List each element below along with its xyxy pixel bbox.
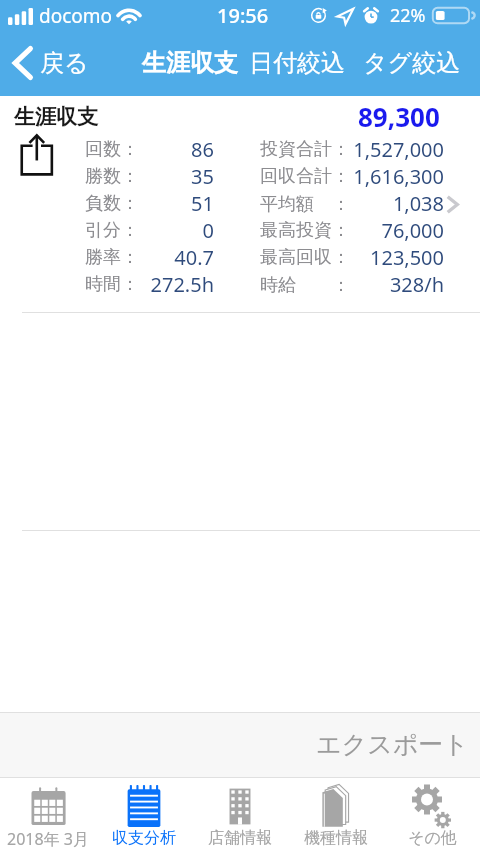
staticText: その他 — [408, 828, 457, 848]
staticText: 回収合計： — [260, 165, 350, 188]
staticText: 272.5h — [139, 271, 214, 298]
staticText: docomo — [39, 3, 113, 29]
staticText: 回数： — [85, 138, 139, 161]
staticText: 2018年 3月 — [7, 828, 89, 850]
staticText: 89,300 — [358, 99, 440, 134]
staticText: 引分： — [85, 219, 139, 242]
staticText: 時給 ： — [260, 272, 350, 297]
staticText: 35 — [139, 163, 214, 190]
staticText: 勝数： — [85, 165, 139, 188]
staticText: 機種情報 — [304, 828, 368, 848]
button[interactable]: Share — [18, 134, 53, 175]
staticText: 生涯収支 — [14, 104, 98, 130]
staticText: 86 — [139, 136, 214, 163]
button[interactable]: 日付絞込 — [249, 48, 345, 78]
button[interactable]: 生涯収支 — [0, 96, 480, 313]
staticText: 51 — [139, 190, 214, 217]
staticText: エクスポート — [316, 729, 469, 760]
staticText: 76,000 — [350, 217, 444, 244]
button[interactable]: タグ絞込 — [363, 48, 461, 78]
staticText: 勝率： — [85, 246, 139, 269]
button[interactable]: 機種情報 — [288, 778, 384, 852]
staticText: 店舗情報 — [208, 828, 272, 848]
button[interactable]: 2018年 3月 — [0, 778, 96, 852]
staticText: 時間： — [85, 273, 139, 296]
staticText: 投資合計： — [260, 138, 350, 161]
staticText: 1,616,300 — [350, 163, 444, 190]
button[interactable]: 生涯収支 — [142, 48, 238, 78]
staticText: 123,500 — [350, 244, 444, 271]
staticText: 負数： — [85, 192, 139, 215]
staticText: 最高回収： — [260, 246, 350, 269]
staticText: 22% — [390, 3, 426, 28]
staticText: 1,527,000 — [350, 136, 444, 163]
staticText: 19:56 — [217, 2, 269, 29]
button[interactable]: 店舗情報 — [192, 778, 288, 852]
staticText: 平均額 ： — [260, 191, 350, 216]
staticText: 1,038 — [350, 190, 444, 217]
staticText: 収支分析 — [112, 828, 176, 848]
staticText: 最高投資： — [260, 219, 350, 242]
button[interactable]: 収支分析 — [96, 778, 192, 852]
button[interactable]: エクスポート — [0, 713, 480, 777]
button[interactable]: その他 — [384, 778, 480, 852]
staticText: 40.7 — [139, 244, 214, 271]
staticText: 328/h — [350, 271, 444, 298]
staticText: 0 — [139, 217, 214, 244]
button[interactable]: 戻る — [0, 39, 99, 87]
staticText: 戻る — [40, 48, 89, 78]
